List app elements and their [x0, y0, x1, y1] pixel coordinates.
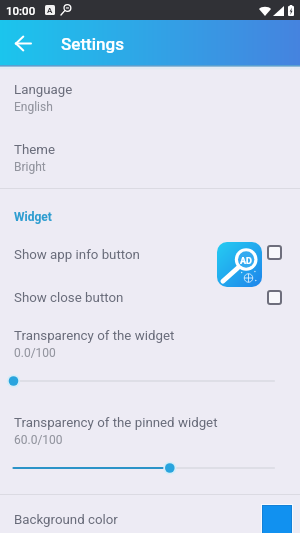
staticText: A: [47, 6, 53, 15]
button[interactable]: Show close button: [0, 281, 300, 315]
staticText: Theme: [14, 142, 56, 158]
button[interactable]: Back: [7, 27, 39, 59]
staticText: Background color: [14, 512, 118, 528]
button[interactable]: Toggle: [266, 289, 282, 305]
staticText: Language: [14, 82, 73, 98]
staticText: English: [14, 100, 53, 114]
button[interactable]: [0, 373, 300, 389]
button[interactable]: [0, 460, 300, 476]
button[interactable]: Language: [0, 81, 300, 118]
staticText: AD: [240, 256, 252, 267]
staticText: Show close button: [14, 290, 124, 306]
staticText: Settings: [61, 34, 124, 54]
staticText: Bright: [14, 160, 46, 174]
button[interactable]: Background color: [0, 503, 300, 533]
button[interactable]: Toggle: [266, 244, 282, 260]
staticText: 0.0/100: [14, 346, 56, 360]
staticText: Widget: [14, 210, 52, 224]
staticText: Transparency of the pinned widget: [14, 415, 218, 431]
staticText: Show app info button: [14, 247, 140, 263]
button[interactable]: Show app info button: [0, 238, 300, 272]
button[interactable]: Theme: [0, 141, 300, 178]
staticText: Transparency of the widget: [14, 328, 175, 344]
staticText: 60.0/100: [14, 433, 63, 447]
staticText: 10:00: [6, 4, 36, 17]
